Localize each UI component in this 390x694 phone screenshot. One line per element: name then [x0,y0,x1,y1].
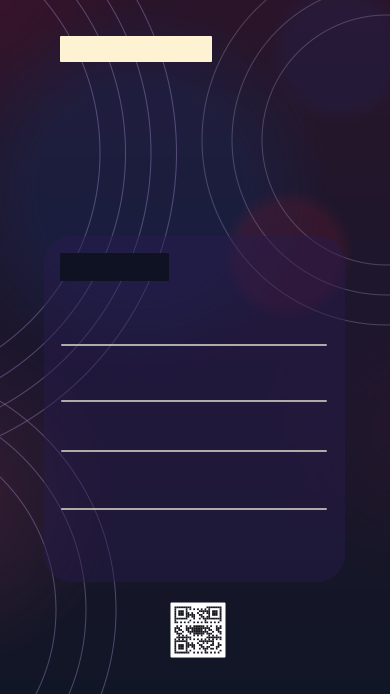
button[interactable]: Ticket QR code [170,602,225,657]
